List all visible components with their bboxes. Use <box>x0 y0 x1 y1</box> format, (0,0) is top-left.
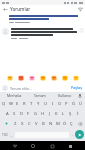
staticText: H <box>41 111 45 117</box>
button[interactable]: Yorum ekle... <box>10 85 69 91</box>
button[interactable]: L <box>60 109 67 118</box>
button[interactable]: H <box>39 109 46 118</box>
button[interactable]: Ü <box>77 99 84 108</box>
button[interactable]: Like <box>0 25 85 39</box>
button[interactable]: D <box>18 109 25 118</box>
button[interactable]: G <box>32 109 39 118</box>
staticText: ?123 <box>2 133 8 137</box>
staticText: V <box>35 121 38 127</box>
staticText: Yorum ekle... <box>10 86 32 91</box>
button[interactable]: Recents <box>48 142 56 150</box>
button[interactable]: Kullanıcı <box>52 93 77 98</box>
staticText: D <box>20 111 24 117</box>
button[interactable]: Ğ <box>70 99 77 108</box>
staticText: . <box>72 132 73 137</box>
button[interactable]: Voice input <box>77 94 83 98</box>
staticText: S <box>13 111 16 117</box>
staticText: M <box>56 121 60 127</box>
staticText: Q <box>2 101 6 107</box>
button[interactable]: Emoji <box>50 74 57 81</box>
staticText: Ç <box>70 121 73 127</box>
staticText: Ö <box>63 121 67 127</box>
button[interactable]: Emoji <box>17 74 24 81</box>
button[interactable] <box>0 12 85 25</box>
button[interactable]: Filter <box>77 6 83 12</box>
button[interactable]: T <box>28 99 35 108</box>
staticText: K <box>55 111 58 117</box>
button[interactable]: Ö <box>61 119 68 128</box>
staticText: Ü <box>79 101 83 107</box>
staticText: Z <box>14 121 17 127</box>
button[interactable]: X <box>19 119 26 128</box>
button[interactable]: Ç <box>68 119 75 128</box>
staticText: Y <box>37 101 40 107</box>
staticText: Paylaş <box>71 85 82 90</box>
staticText: L <box>62 111 65 117</box>
staticText: C <box>28 121 31 127</box>
staticText: , <box>11 132 12 137</box>
button[interactable]: R <box>21 99 28 108</box>
button[interactable]: Q <box>1 99 7 108</box>
button[interactable]: Paylaş <box>70 85 83 90</box>
button[interactable]: Emoji <box>39 74 46 81</box>
button[interactable]: Keyboard <box>66 142 74 150</box>
staticText: Ş <box>69 111 72 117</box>
button[interactable]: , <box>9 130 14 139</box>
staticText: E <box>16 101 19 107</box>
button[interactable]: . <box>70 130 75 139</box>
button[interactable]: W <box>7 99 14 108</box>
button[interactable]: A <box>4 109 11 118</box>
button[interactable]: İ <box>74 109 81 118</box>
button[interactable]: E <box>14 99 21 108</box>
button[interactable]: Emoji <box>61 74 68 81</box>
staticText: F <box>27 111 30 117</box>
button[interactable]: Emoji <box>72 74 79 81</box>
button[interactable]: V <box>33 119 40 128</box>
button[interactable]: Send <box>75 130 84 139</box>
button[interactable]: Ş <box>67 109 74 118</box>
button[interactable]: Like <box>79 28 83 32</box>
staticText: I <box>52 101 54 107</box>
button[interactable]: P <box>63 99 70 108</box>
staticText: T <box>30 101 33 107</box>
staticText: W <box>9 101 13 107</box>
button[interactable]: Y <box>35 99 42 108</box>
button[interactable]: Merhaba <box>2 93 27 98</box>
button[interactable]: Home <box>29 142 37 150</box>
staticText: X <box>21 121 24 127</box>
staticText: N <box>49 121 53 127</box>
button[interactable]: U <box>42 99 49 108</box>
button[interactable]: Back <box>2 6 8 12</box>
button[interactable]: Shift <box>1 119 11 128</box>
button[interactable]: S <box>11 109 18 118</box>
button[interactable]: Backspace <box>75 119 84 128</box>
button[interactable]: Z <box>11 119 19 128</box>
staticText: A <box>6 111 9 117</box>
button[interactable]: J <box>46 109 53 118</box>
button[interactable]: K <box>53 109 60 118</box>
button[interactable]: C <box>26 119 33 128</box>
staticText: G <box>34 111 38 117</box>
staticText: Yorumlar <box>10 6 31 12</box>
staticText: İ <box>77 111 79 117</box>
staticText: Kullanıcı <box>58 93 72 98</box>
button[interactable]: Tamam <box>27 93 52 98</box>
button[interactable]: Emoji <box>28 74 35 81</box>
button[interactable]: O <box>56 99 63 108</box>
staticText: Tamam <box>34 93 46 98</box>
staticText: O <box>58 101 62 107</box>
button[interactable]: M <box>54 119 61 128</box>
button[interactable]: Emoji <box>6 74 13 81</box>
staticText: P <box>65 101 68 107</box>
button[interactable]: B <box>40 119 47 128</box>
button[interactable]: I <box>49 99 56 108</box>
staticText: J <box>49 111 51 117</box>
button[interactable]: Back <box>11 142 19 150</box>
button[interactable]: F <box>25 109 32 118</box>
button[interactable]: ?123 <box>1 131 9 139</box>
staticText: R <box>23 101 26 107</box>
button[interactable]: N <box>47 119 54 128</box>
staticText: U <box>44 101 48 107</box>
staticText: Merhaba <box>7 93 22 98</box>
